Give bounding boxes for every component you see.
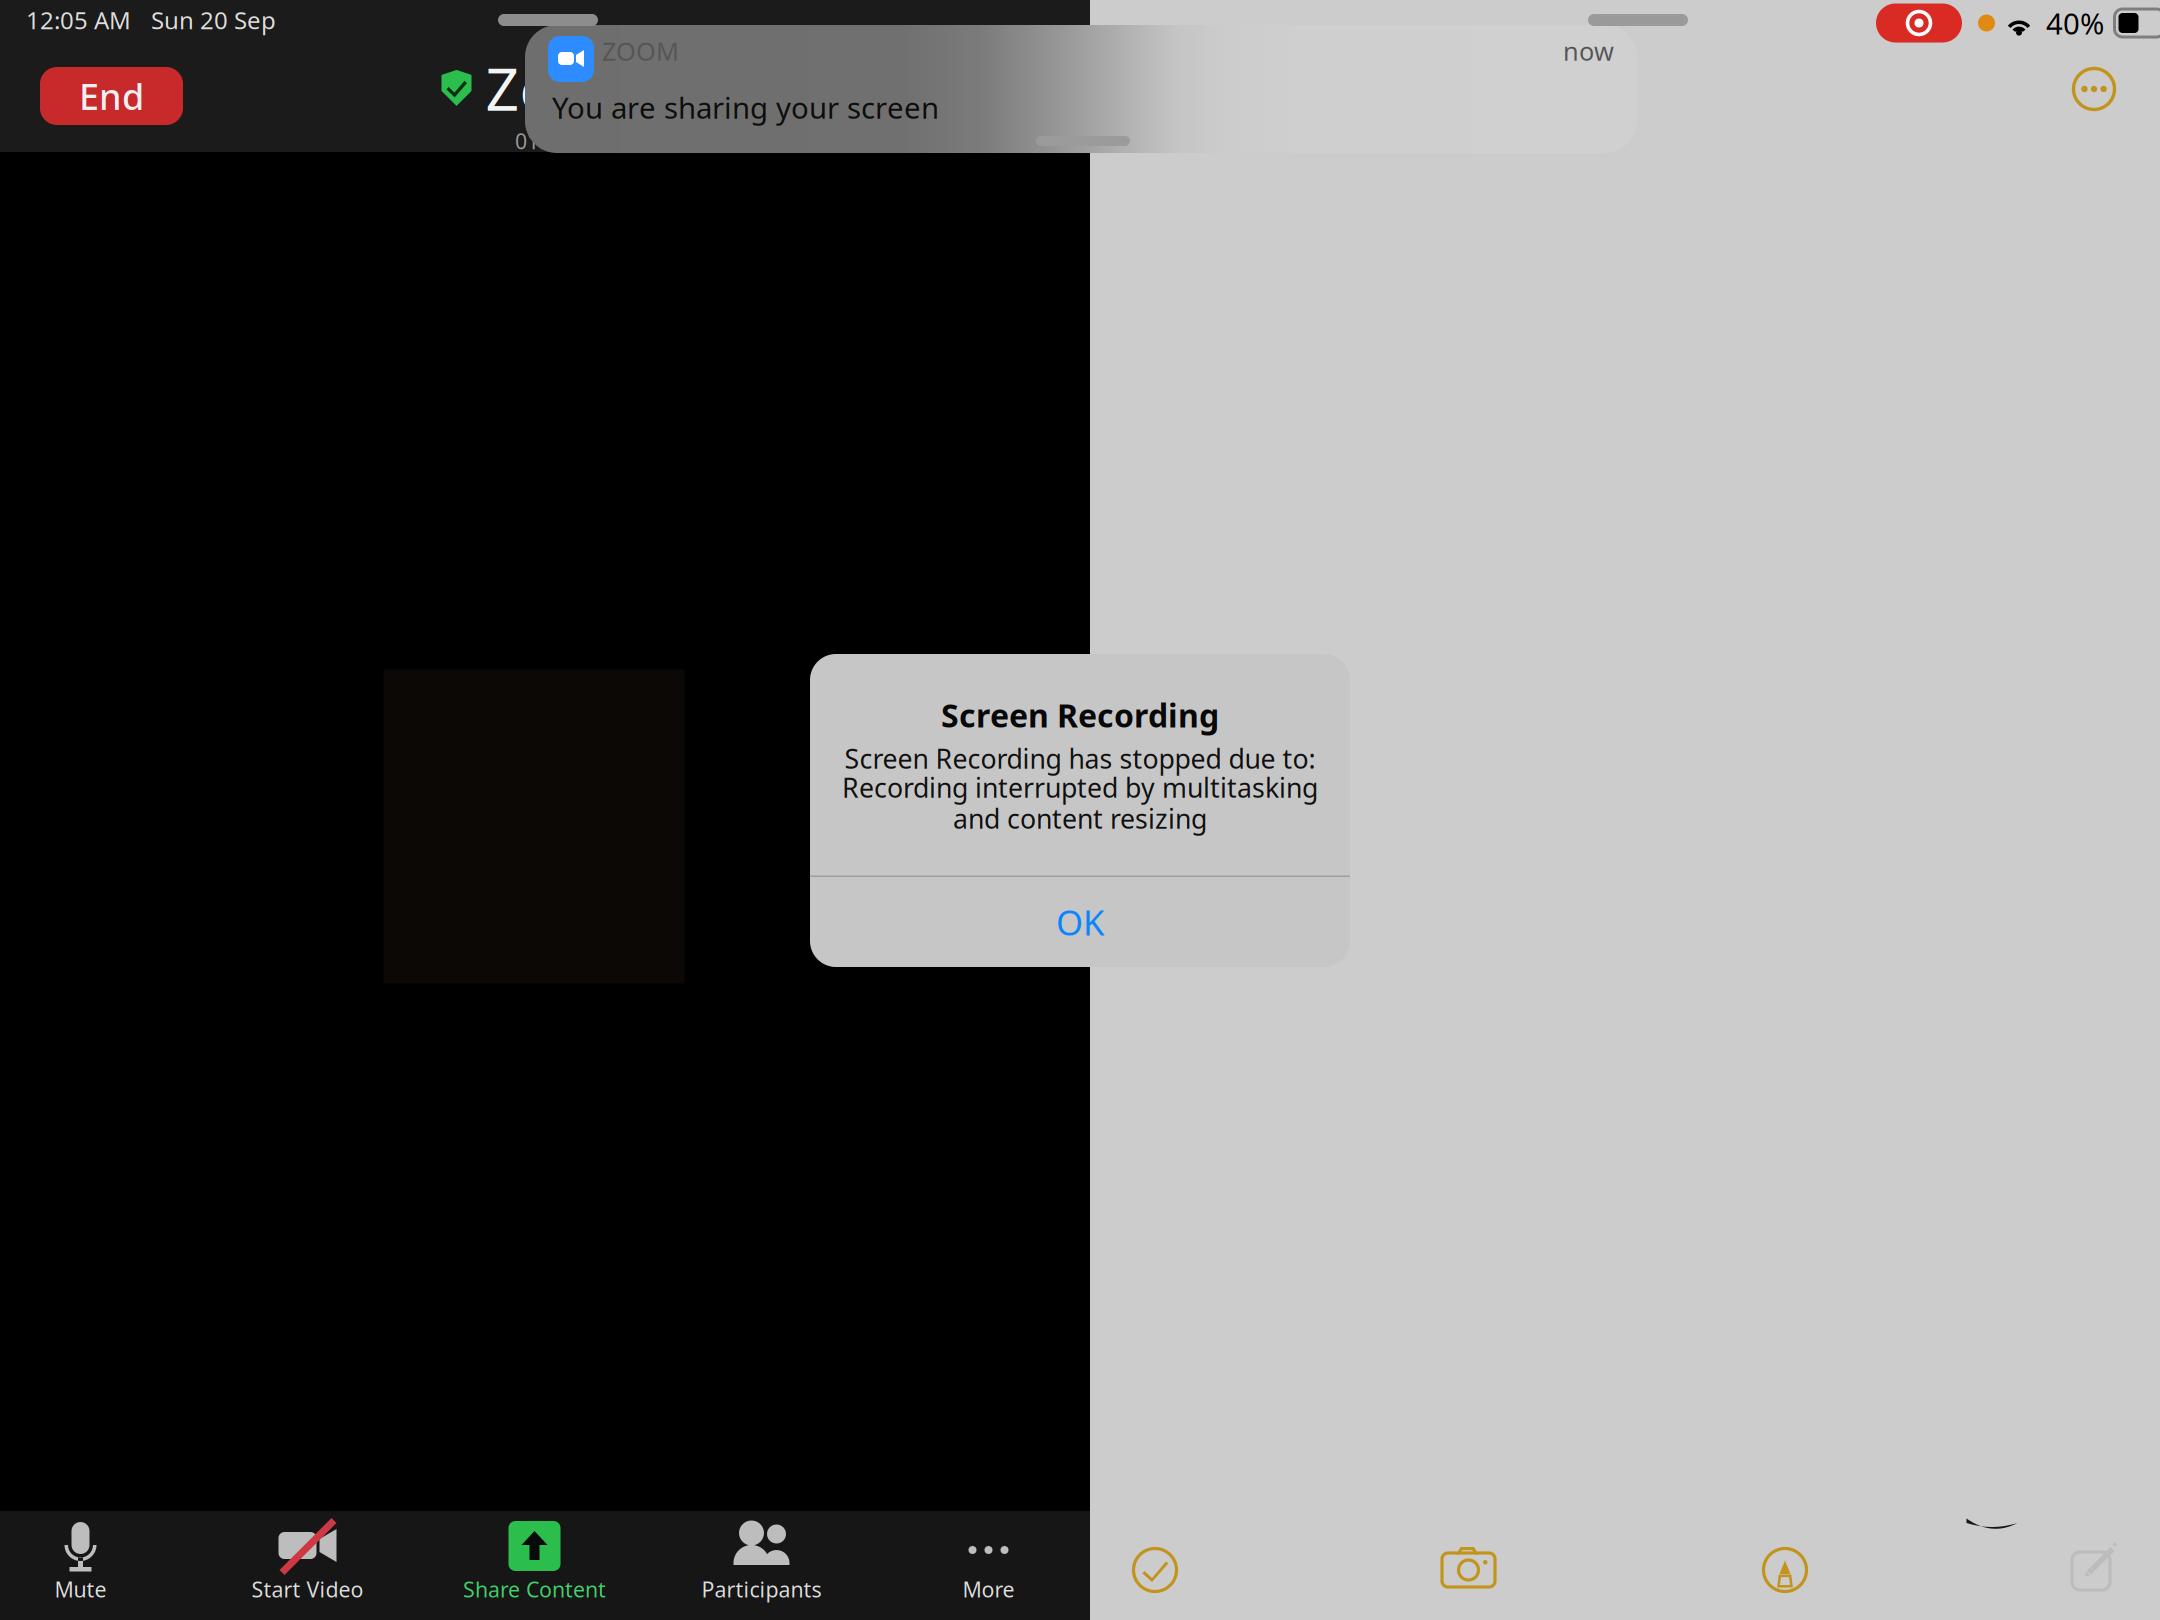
staticText: Zoom — [485, 49, 644, 127]
staticText: and content resizing — [953, 801, 1207, 836]
button[interactable]: Markup — [2072, 1543, 2118, 1591]
button[interactable]: More options — [2072, 67, 2116, 111]
staticText: 40% — [2046, 3, 2104, 42]
button[interactable]: Mute — [0, 1511, 194, 1620]
button[interactable]: Participants — [648, 1511, 875, 1620]
button[interactable]: OK — [810, 877, 1350, 967]
button[interactable]: End — [40, 67, 183, 125]
staticText: Sun 20 Sep — [151, 4, 276, 36]
staticText: End — [79, 72, 144, 120]
button[interactable]: Start Video — [194, 1511, 421, 1620]
staticText: Start Video — [251, 1575, 363, 1603]
staticText: ZOOM — [602, 34, 679, 68]
staticText: now — [1563, 34, 1614, 68]
staticText: Recording interrupted by multitasking — [842, 770, 1318, 805]
staticText: Share Content — [463, 1575, 606, 1603]
button[interactable]: Share Content — [421, 1511, 648, 1620]
staticText: Screen Recording has stopped due to: — [844, 741, 1315, 776]
button[interactable]: Insert Photo — [1442, 1542, 1496, 1588]
staticText: Mute — [54, 1575, 106, 1603]
button[interactable]: Done — [1133, 1548, 1177, 1592]
staticText: Participants — [701, 1575, 821, 1603]
staticText: OK — [1056, 899, 1104, 945]
staticText: 12:05 AM — [26, 4, 131, 36]
staticText: Screen Recording — [941, 694, 1219, 736]
staticText: More — [962, 1575, 1014, 1603]
staticText: 01:07 — [515, 127, 569, 155]
button[interactable]: More — [875, 1511, 1102, 1620]
staticText: You are sharing your screen — [552, 88, 939, 127]
button[interactable]: Marker — [1763, 1548, 1807, 1592]
